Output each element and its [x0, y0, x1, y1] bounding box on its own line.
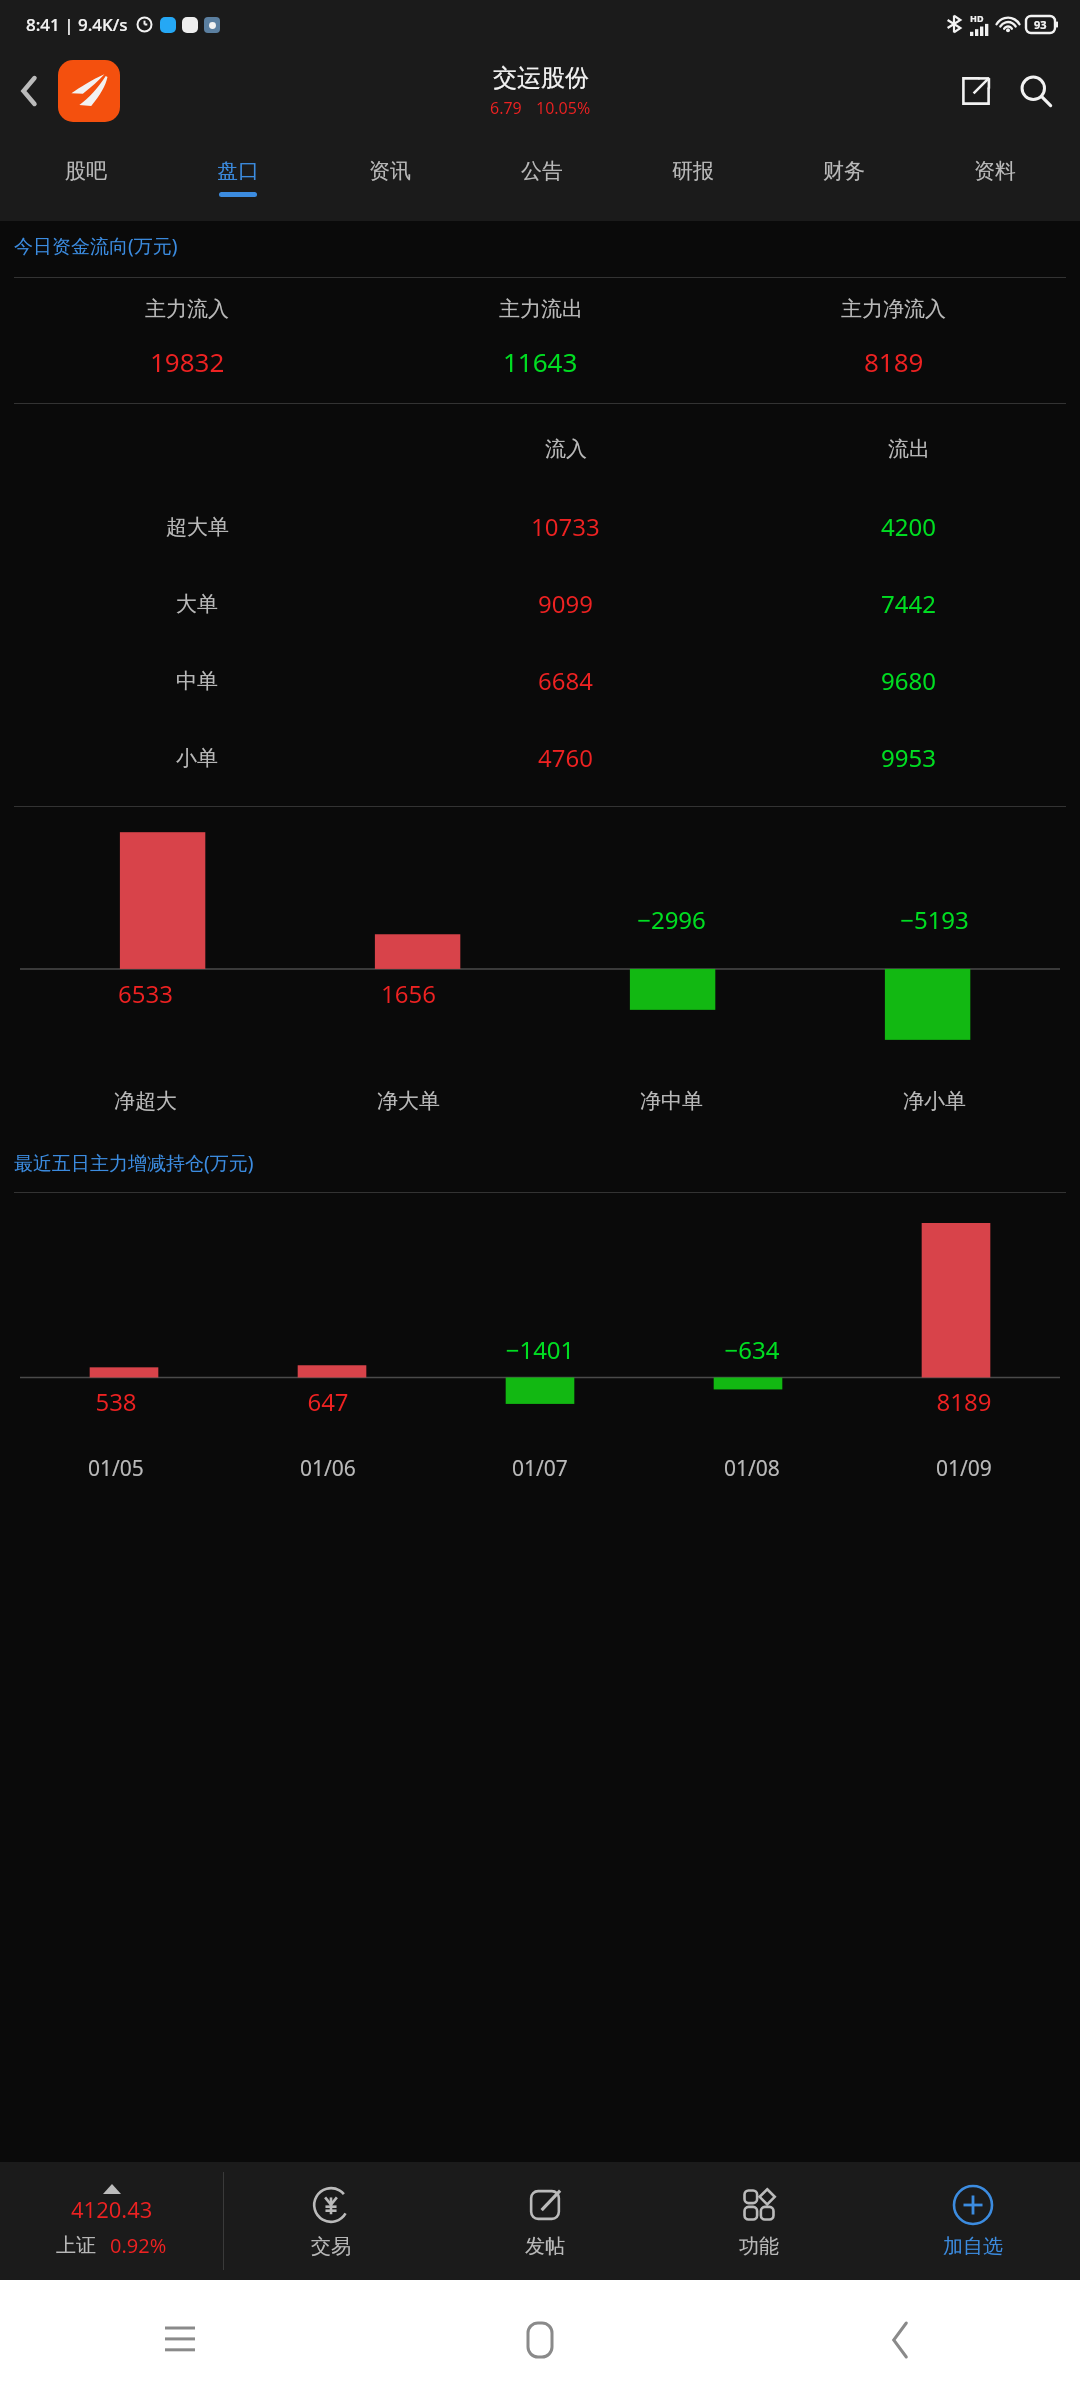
button[interactable]: Share [946, 61, 1006, 121]
staticText: 研报 [672, 158, 714, 184]
staticText: 最近五日主力增减持仓(万元) [14, 1150, 254, 1176]
staticText: 主力流入 [145, 296, 229, 322]
staticText: 净大单 [377, 1088, 440, 1114]
staticText: 加自选 [943, 2234, 1003, 2259]
staticText: 7442 [881, 587, 936, 620]
staticText: 8189 [864, 344, 924, 379]
staticText: 上证 [56, 2233, 96, 2258]
staticText: 净超大 [114, 1088, 177, 1114]
button[interactable]: 盘口 [162, 133, 314, 221]
staticText: 11643 [503, 344, 578, 379]
staticText: 功能 [739, 2234, 779, 2259]
staticText: 538 [10, 1385, 222, 1418]
staticText: 大单 [176, 591, 218, 617]
staticText: 647 [222, 1385, 434, 1418]
staticText: 01/06 [300, 1454, 356, 1483]
staticText: HD [970, 12, 984, 24]
button[interactable]: 大单 [0, 565, 1080, 642]
button[interactable]: Home [360, 2280, 720, 2400]
staticText: 01/07 [512, 1454, 568, 1483]
button[interactable]: 股吧 [10, 133, 162, 221]
staticText: 01/09 [936, 1454, 992, 1483]
staticText: 主力流出 [499, 296, 583, 322]
staticText: −5193 [803, 903, 1066, 936]
staticText: 19832 [150, 344, 225, 379]
staticText: 1656 [277, 977, 540, 1010]
staticText: 流入 [545, 436, 587, 462]
staticText: 4200 [881, 510, 936, 543]
button[interactable]: Recents [0, 2280, 360, 2400]
staticText: −634 [646, 1333, 858, 1366]
staticText: 10733 [531, 510, 600, 543]
button[interactable]: 功能 [652, 2162, 866, 2280]
staticText: −1401 [434, 1333, 646, 1366]
staticText: −2996 [540, 903, 803, 936]
staticText: 01/08 [724, 1454, 780, 1483]
staticText: 小单 [176, 745, 218, 771]
button[interactable]: 小单 [0, 719, 1080, 796]
staticText: 93 [1034, 17, 1047, 32]
button[interactable]: Search [1006, 61, 1066, 121]
staticText: 交易 [311, 2234, 351, 2259]
staticText: 股吧 [65, 158, 107, 184]
staticText: 10.05% [536, 97, 591, 119]
button[interactable]: 4120.43 [0, 2162, 223, 2280]
staticText: 财务 [823, 158, 865, 184]
staticText: 4760 [538, 741, 593, 774]
staticText: 资料 [974, 158, 1016, 184]
staticText: 交运股份 [493, 63, 589, 93]
button[interactable]: 超大单 [0, 488, 1080, 565]
staticText: 盘口 [217, 158, 259, 184]
staticText: 01/05 [88, 1454, 144, 1483]
button[interactable]: 主力净流入 [717, 296, 1070, 379]
staticText: 6684 [538, 664, 593, 697]
staticText: 超大单 [166, 514, 229, 540]
staticText: 4120.43 [71, 2194, 153, 2224]
staticText: 9680 [881, 664, 936, 697]
button[interactable]: 资料 [919, 133, 1070, 221]
button[interactable]: 资讯 [314, 133, 466, 221]
button[interactable]: 加自选 [866, 2162, 1080, 2280]
staticText: 6.79 [490, 97, 522, 119]
button[interactable]: Back [720, 2280, 1080, 2400]
button[interactable]: 主力流入 [10, 296, 364, 379]
button[interactable]: 研报 [617, 133, 768, 221]
button[interactable]: 公告 [466, 133, 617, 221]
button[interactable]: 主力流出 [364, 296, 717, 379]
staticText: 主力净流入 [841, 296, 946, 322]
button[interactable]: 中单 [0, 642, 1080, 719]
staticText: 8:41 | 9.4K/s [26, 13, 128, 36]
staticText: 9099 [538, 587, 593, 620]
button[interactable]: 发帖 [438, 2162, 652, 2280]
staticText: 0.92% [110, 2232, 167, 2259]
staticText: 9953 [881, 741, 936, 774]
staticText: 发帖 [525, 2234, 565, 2259]
staticText: 中单 [176, 668, 218, 694]
staticText: 6533 [14, 977, 277, 1010]
staticText: 公告 [521, 158, 563, 184]
staticText: 净小单 [903, 1088, 966, 1114]
button[interactable]: 交易 [224, 2162, 438, 2280]
staticText: 8189 [858, 1385, 1070, 1418]
staticText: 流出 [888, 436, 930, 462]
staticText: 资讯 [369, 158, 411, 184]
staticText: 今日资金流向(万元) [14, 233, 178, 259]
button[interactable]: Back [0, 48, 58, 133]
button[interactable]: 财务 [768, 133, 919, 221]
staticText: 净中单 [640, 1088, 703, 1114]
button[interactable]: App logo [58, 60, 120, 122]
